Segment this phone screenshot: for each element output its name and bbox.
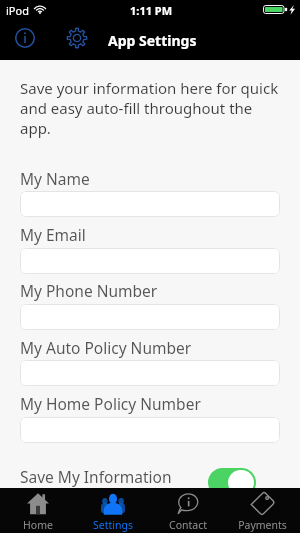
staticText: My Email	[20, 224, 86, 245]
staticText: Save your information here for quick and…	[20, 78, 282, 138]
button[interactable]: Settings	[64, 25, 90, 51]
button[interactable]	[20, 248, 280, 274]
button[interactable]: Save My Information toggle	[208, 468, 256, 497]
staticText: 1:11 PM	[130, 3, 173, 18]
staticText: Home	[23, 518, 53, 532]
staticText: Save My Information	[20, 466, 172, 487]
staticText: App Settings	[108, 31, 197, 50]
staticText: My Phone Number	[20, 280, 158, 301]
button[interactable]: Contact	[150, 488, 225, 533]
button[interactable]	[20, 417, 280, 443]
button[interactable]: Payments	[225, 488, 300, 533]
button[interactable]	[20, 304, 280, 330]
staticText: iPod	[6, 3, 29, 18]
button[interactable]: Info	[12, 25, 38, 51]
staticText: Settings	[93, 518, 133, 532]
button[interactable]: Home	[0, 488, 75, 533]
button[interactable]	[20, 360, 280, 386]
button[interactable]	[20, 191, 280, 217]
staticText: My Auto Policy Number	[20, 337, 192, 358]
staticText: Contact	[169, 518, 207, 532]
button[interactable]: Settings	[75, 488, 150, 533]
staticText: Payments	[238, 518, 287, 532]
staticText: My Name	[20, 168, 90, 189]
staticText: My Home Policy Number	[20, 393, 201, 414]
